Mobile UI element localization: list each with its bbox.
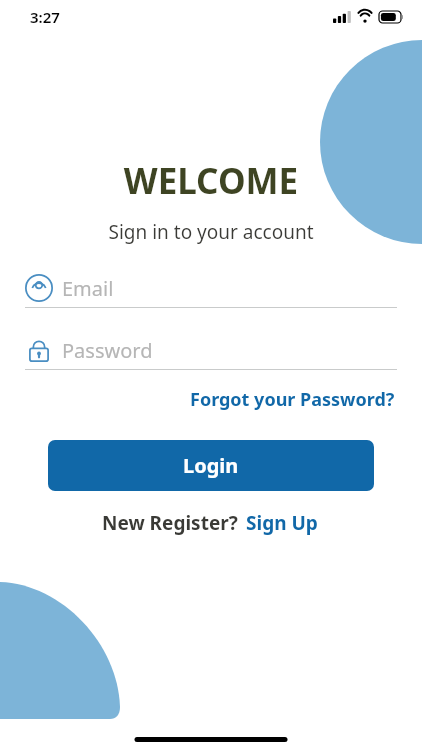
button[interactable]: Login xyxy=(48,440,374,491)
staticText: WELCOME xyxy=(0,157,422,205)
button[interactable]: Password xyxy=(25,331,397,370)
button[interactable]: Sign Up xyxy=(244,507,320,539)
staticText: 3:27 xyxy=(30,7,60,27)
staticText: Email xyxy=(62,275,114,302)
staticText: New Register? xyxy=(102,510,238,536)
staticText: Forgot your Password? xyxy=(190,387,395,412)
staticText: Login xyxy=(183,452,239,479)
staticText: Password xyxy=(62,337,153,364)
staticText: Sign in to your account xyxy=(0,219,422,245)
button[interactable]: Email xyxy=(25,269,397,308)
button[interactable]: Forgot your Password? xyxy=(188,383,397,416)
staticText: Sign Up xyxy=(246,510,318,536)
